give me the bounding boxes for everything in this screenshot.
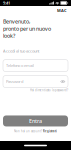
staticText: Telefono o email [6,63,34,68]
staticText: 9:41 [3,0,10,6]
staticText: Hai dimenticato la password? [30,89,68,92]
staticText: Benvenuto, [3,18,30,25]
button[interactable]: Hai dimenticato la password? [3,89,68,92]
staticText: Entra [29,117,42,124]
staticText: Registrati [43,129,57,133]
staticText: look? [3,32,15,39]
button[interactable]: Registrati [43,129,57,133]
button[interactable]: MAC [57,8,67,13]
button[interactable]: Entra [3,115,68,126]
staticText: pronto per un nuovo [3,25,51,32]
staticText: Password [6,79,23,84]
staticText: Accedi al tuo account [3,48,39,53]
staticText: MAC [57,8,67,13]
staticText: Non hai un account? [14,129,42,133]
